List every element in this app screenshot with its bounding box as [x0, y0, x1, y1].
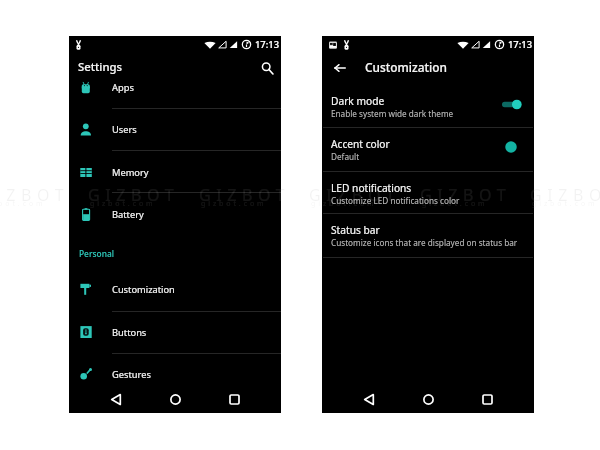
button[interactable]: Search	[256, 57, 278, 79]
staticText: gizbot.com	[311, 199, 377, 209]
button[interactable]: Recent apps	[222, 387, 246, 411]
staticText: Status bar	[331, 223, 380, 237]
staticText: Customize icons that are displayed on st…	[331, 237, 518, 248]
staticText: gizbot.com	[422, 199, 488, 209]
staticText: GIZBOT	[199, 184, 291, 206]
staticText: Accent color	[331, 137, 390, 151]
button[interactable]: Memory	[69, 151, 281, 193]
button[interactable]: Users	[69, 108, 281, 150]
staticText: gizbot.com	[201, 199, 267, 209]
staticText: LED notifications	[331, 181, 412, 195]
staticText: GIZBOT	[530, 184, 600, 206]
staticText: Dark mode	[331, 94, 385, 108]
staticText: Customize LED notifications color	[331, 195, 460, 206]
button[interactable]: Apps	[69, 66, 281, 108]
staticText: Memory	[112, 166, 149, 179]
staticText: gizbot.com	[532, 199, 598, 209]
button[interactable]: Gestures	[69, 353, 281, 395]
staticText: 17:13	[508, 38, 533, 51]
staticText: gizbot.com	[532, 199, 598, 209]
button[interactable]: Home	[163, 387, 187, 411]
staticText: 17:13	[255, 38, 280, 51]
staticText: GIZBOT	[420, 184, 512, 206]
staticText: gizbot.com	[90, 199, 156, 209]
button[interactable]: Dark mode	[322, 89, 534, 119]
button[interactable]: Accent color	[322, 132, 534, 162]
staticText: GIZBOT	[199, 184, 291, 206]
staticText: GIZBOT	[0, 184, 70, 206]
staticText: GIZBOT	[309, 184, 401, 206]
staticText: Buttons	[112, 326, 147, 339]
staticText: GIZBOT	[420, 184, 512, 206]
staticText: Customization	[112, 283, 175, 296]
staticText: gizbot.com	[201, 199, 267, 209]
button[interactable]: Back	[329, 57, 351, 79]
staticText: gizbot.com	[90, 199, 156, 209]
staticText: gizbot.com	[422, 199, 488, 209]
staticText: Personal	[79, 248, 115, 259]
staticText: GIZBOT	[88, 184, 180, 206]
button[interactable]: Status bar	[322, 218, 534, 248]
staticText: Apps	[112, 81, 134, 94]
staticText: GIZBOT	[309, 184, 401, 206]
button[interactable]: Customization	[69, 268, 281, 310]
button[interactable]: Recent apps	[475, 387, 499, 411]
staticText: GIZBOT	[0, 184, 70, 206]
staticText: GIZBOT	[530, 184, 600, 206]
staticText: Battery	[112, 208, 144, 221]
button[interactable]: Home	[416, 387, 440, 411]
button[interactable]: Battery	[69, 193, 281, 235]
button[interactable]: LED notifications	[322, 176, 534, 206]
button[interactable]: Back	[357, 387, 381, 411]
staticText: Settings	[78, 59, 122, 74]
staticText: Default	[331, 151, 360, 162]
staticText: gizbot.com	[311, 199, 377, 209]
staticText: Users	[112, 123, 137, 136]
staticText: Gestures	[112, 368, 151, 381]
staticText: GIZBOT	[88, 184, 180, 206]
button[interactable]: Back	[104, 387, 128, 411]
button[interactable]: Buttons	[69, 311, 281, 353]
staticText: Enable system wide dark theme	[331, 108, 454, 119]
staticText: Customization	[365, 59, 448, 75]
